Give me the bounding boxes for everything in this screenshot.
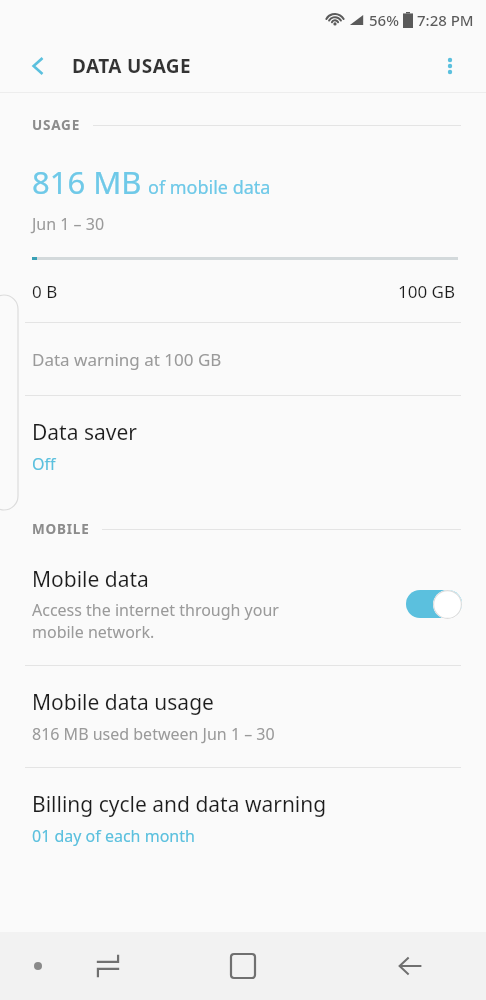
staticText: Data warning at 100 GB — [32, 348, 222, 371]
button[interactable]: Back — [18, 46, 58, 86]
staticText: DATA USAGE — [72, 53, 192, 79]
staticText: 816 MB — [32, 161, 142, 203]
staticText: Access the internet through your mobile … — [32, 599, 279, 643]
staticText: Data saver — [32, 418, 137, 447]
staticText: Billing cycle and data warning — [32, 790, 327, 819]
button[interactable]: Home — [215, 938, 271, 994]
staticText: Mobile data — [32, 565, 149, 594]
button[interactable]: Back — [384, 940, 436, 992]
staticText: of mobile data — [148, 175, 271, 200]
button[interactable]: Billing cycle and data warning — [0, 768, 486, 869]
button[interactable]: Mobile data — [0, 565, 486, 643]
staticText: 100 GB — [398, 280, 456, 303]
staticText: 7:28 PM — [417, 10, 474, 30]
staticText: Jun 1 – 30 — [32, 213, 105, 235]
button[interactable]: Mobile data usage — [0, 666, 486, 767]
staticText: 0 B — [32, 280, 58, 303]
button[interactable]: Mobile data toggle — [406, 589, 462, 619]
staticText: MOBILE — [32, 520, 90, 538]
button[interactable]: Data warning at 100 GB — [0, 323, 486, 395]
staticText: 01 day of each month — [32, 825, 195, 847]
staticText: USAGE — [32, 116, 81, 134]
button[interactable]: Recents — [82, 940, 134, 992]
staticText: Off — [32, 453, 56, 475]
staticText: Mobile data usage — [32, 688, 214, 717]
staticText: 56% — [369, 10, 399, 30]
button[interactable]: More options — [430, 46, 470, 86]
staticText: 816 MB used between Jun 1 – 30 — [32, 723, 275, 745]
button[interactable]: Data saver — [0, 396, 486, 497]
